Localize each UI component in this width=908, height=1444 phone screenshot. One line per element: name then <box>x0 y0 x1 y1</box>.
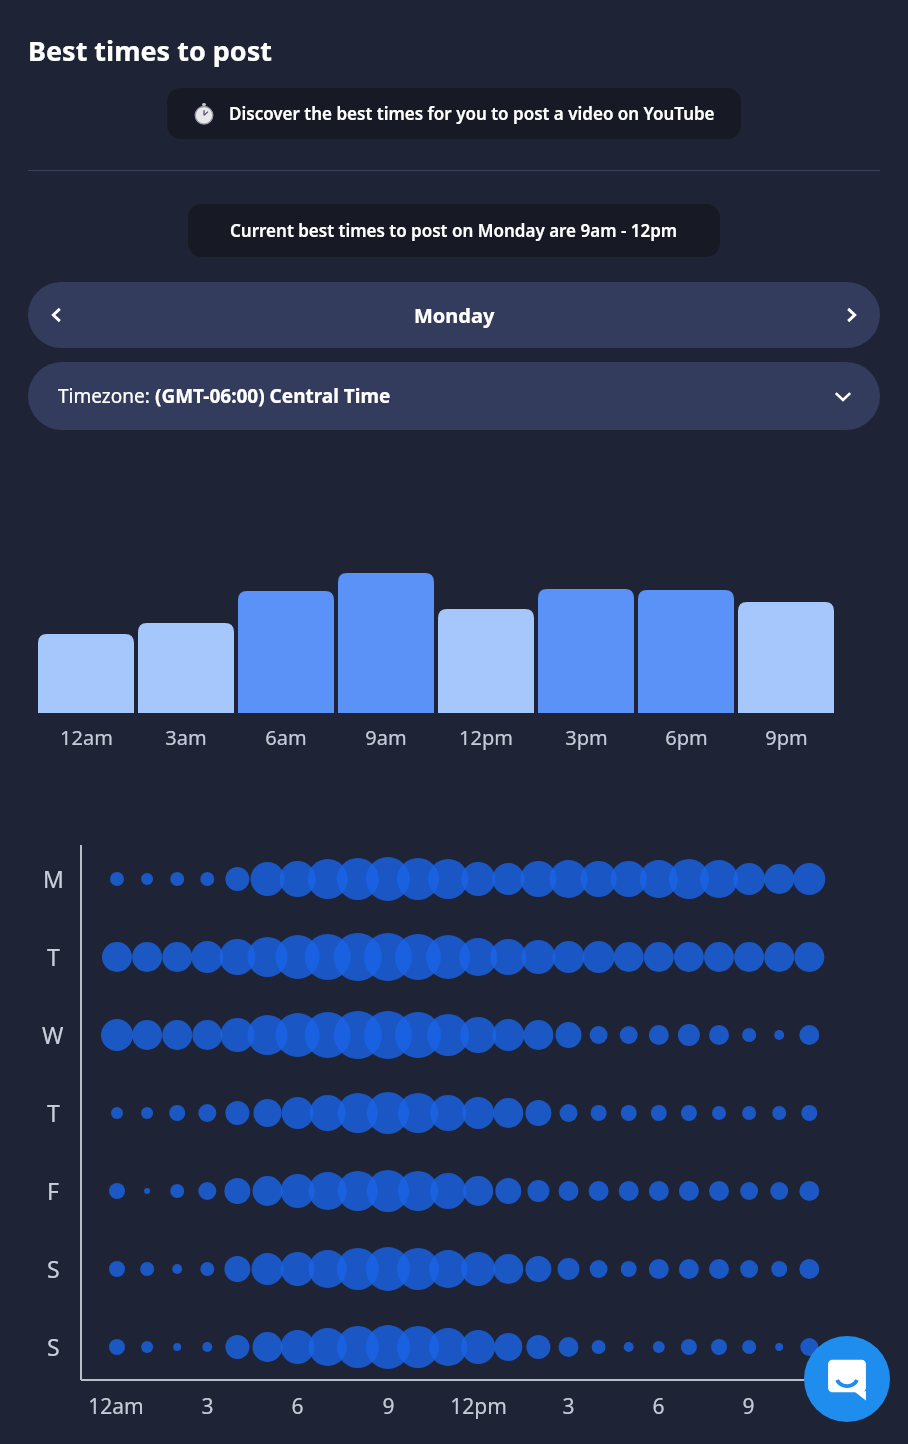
staticText: M <box>43 863 64 894</box>
staticText: 3 <box>562 1392 575 1421</box>
staticText: 12pm <box>450 1392 507 1421</box>
staticText: 6 <box>291 1392 304 1421</box>
staticText: 6 <box>652 1392 665 1421</box>
staticText: Timezone: <box>58 383 155 409</box>
staticText: 3 <box>201 1392 214 1421</box>
staticText: W <box>42 1019 64 1050</box>
staticText: (GMT-06:00) Central Time <box>155 383 391 409</box>
staticText: Best times to post <box>28 32 272 69</box>
staticText: 3am <box>165 724 207 751</box>
button[interactable]: Discover the best times for you to post … <box>167 88 741 139</box>
staticText: T <box>47 1097 60 1128</box>
button[interactable]: Previous day <box>28 286 86 344</box>
staticText: Discover the best times for you to post … <box>229 102 715 125</box>
staticText: F <box>47 1175 59 1206</box>
staticText: 9pm <box>765 724 808 751</box>
staticText: 9 <box>382 1392 395 1421</box>
staticText: 12am <box>60 724 113 751</box>
button[interactable]: Open chat support <box>804 1336 890 1422</box>
staticText: Current best times to post on Monday are… <box>230 219 678 242</box>
staticText: 6am <box>265 724 307 751</box>
staticText: Monday <box>414 302 495 329</box>
other: Expand timezone list <box>828 381 858 411</box>
staticText: 6pm <box>665 724 708 751</box>
staticText: 3pm <box>565 724 608 751</box>
staticText: S <box>47 1331 60 1362</box>
button[interactable]: Timezone: <box>28 362 880 430</box>
staticText: T <box>47 941 60 972</box>
staticText: 9am <box>365 724 407 751</box>
staticText: 12am <box>88 1392 144 1421</box>
button[interactable]: Current best times to post on Monday are… <box>188 204 720 257</box>
staticText: S <box>47 1253 60 1284</box>
staticText: 12pm <box>459 724 513 751</box>
staticText: 9 <box>742 1392 755 1421</box>
button[interactable]: Next day <box>822 286 880 344</box>
